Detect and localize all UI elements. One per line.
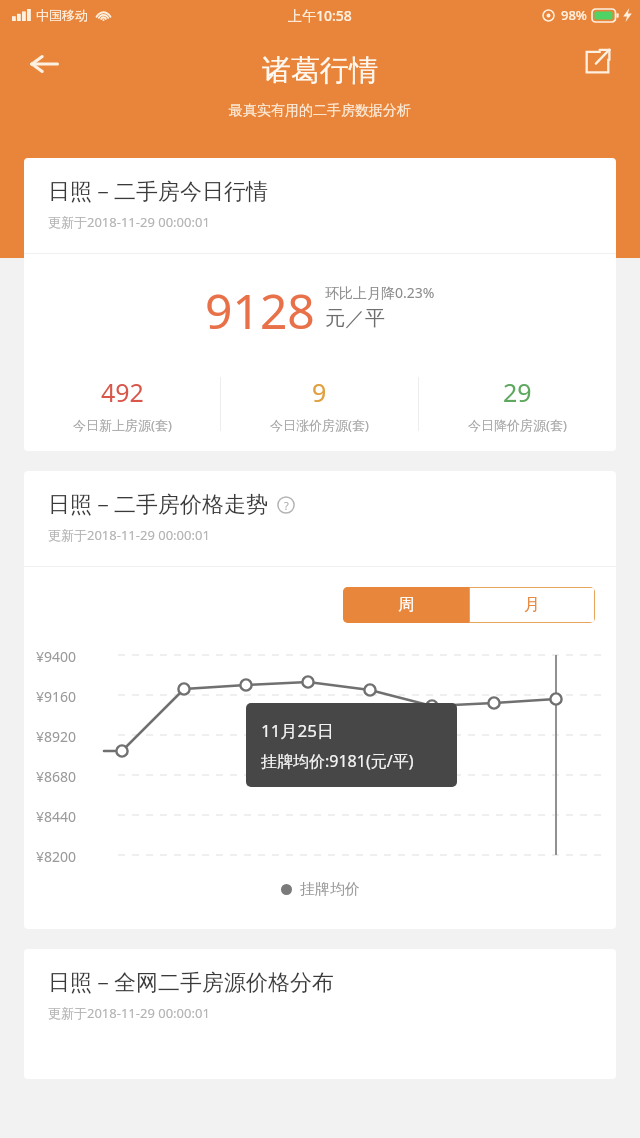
button[interactable]: 月 [470, 588, 594, 622]
button[interactable]: 492 [24, 367, 220, 441]
staticText: 月 [524, 595, 540, 615]
staticText: 492 [101, 375, 144, 409]
staticText: ¥8440 [36, 807, 77, 826]
staticText: ¥8680 [36, 767, 77, 786]
button[interactable]: Back [16, 36, 72, 92]
staticText: 更新于2018-11-29 00:00:01 [48, 1004, 210, 1022]
staticText: ¥9160 [36, 687, 77, 706]
staticText: 29 [503, 375, 532, 409]
staticText: 日照－全网二手房源价格分布 [48, 969, 334, 997]
staticText: 挂牌均价:9181(元/平) [261, 750, 414, 772]
button[interactable]: 日照－二手房今日行情 [24, 158, 616, 451]
staticText: 上午10:58 [288, 6, 352, 25]
staticText: 日照－二手房价格走势 [48, 491, 268, 519]
staticText: ¥9400 [36, 647, 77, 666]
button[interactable]: 日照－全网二手房源价格分布 [24, 949, 616, 1079]
button[interactable]: Share [570, 34, 624, 88]
staticText: 今日涨价房源(套) [270, 416, 369, 434]
staticText: 11月25日 [261, 719, 334, 742]
staticText: ¥8920 [36, 727, 77, 746]
staticText: 挂牌均价 [300, 880, 360, 899]
button[interactable]: Help [275, 494, 297, 516]
staticText: 更新于2018-11-29 00:00:01 [48, 213, 210, 231]
staticText: 中国移动 [36, 7, 88, 23]
button[interactable]: 29 [419, 367, 616, 441]
staticText: 最真实有用的二手房数据分析 [229, 102, 411, 120]
button[interactable]: 9 [221, 367, 418, 441]
staticText: 周 [398, 595, 414, 615]
staticText: 环比上月降0.23% [325, 283, 435, 302]
staticText: 日照－二手房今日行情 [48, 178, 268, 206]
staticText: 今日降价房源(套) [468, 416, 567, 434]
button[interactable]: 周 [343, 587, 469, 623]
staticText: ¥8200 [36, 847, 77, 866]
staticText: 今日新上房源(套) [73, 416, 172, 434]
staticText: 98% [561, 6, 587, 24]
staticText: 元／平 [325, 306, 385, 331]
staticText: 9128 [205, 278, 315, 343]
staticText: 更新于2018-11-29 00:00:01 [48, 526, 210, 544]
staticText: ? [284, 498, 289, 513]
staticText: 诸葛行情 [262, 52, 378, 89]
staticText: 9 [312, 375, 327, 409]
